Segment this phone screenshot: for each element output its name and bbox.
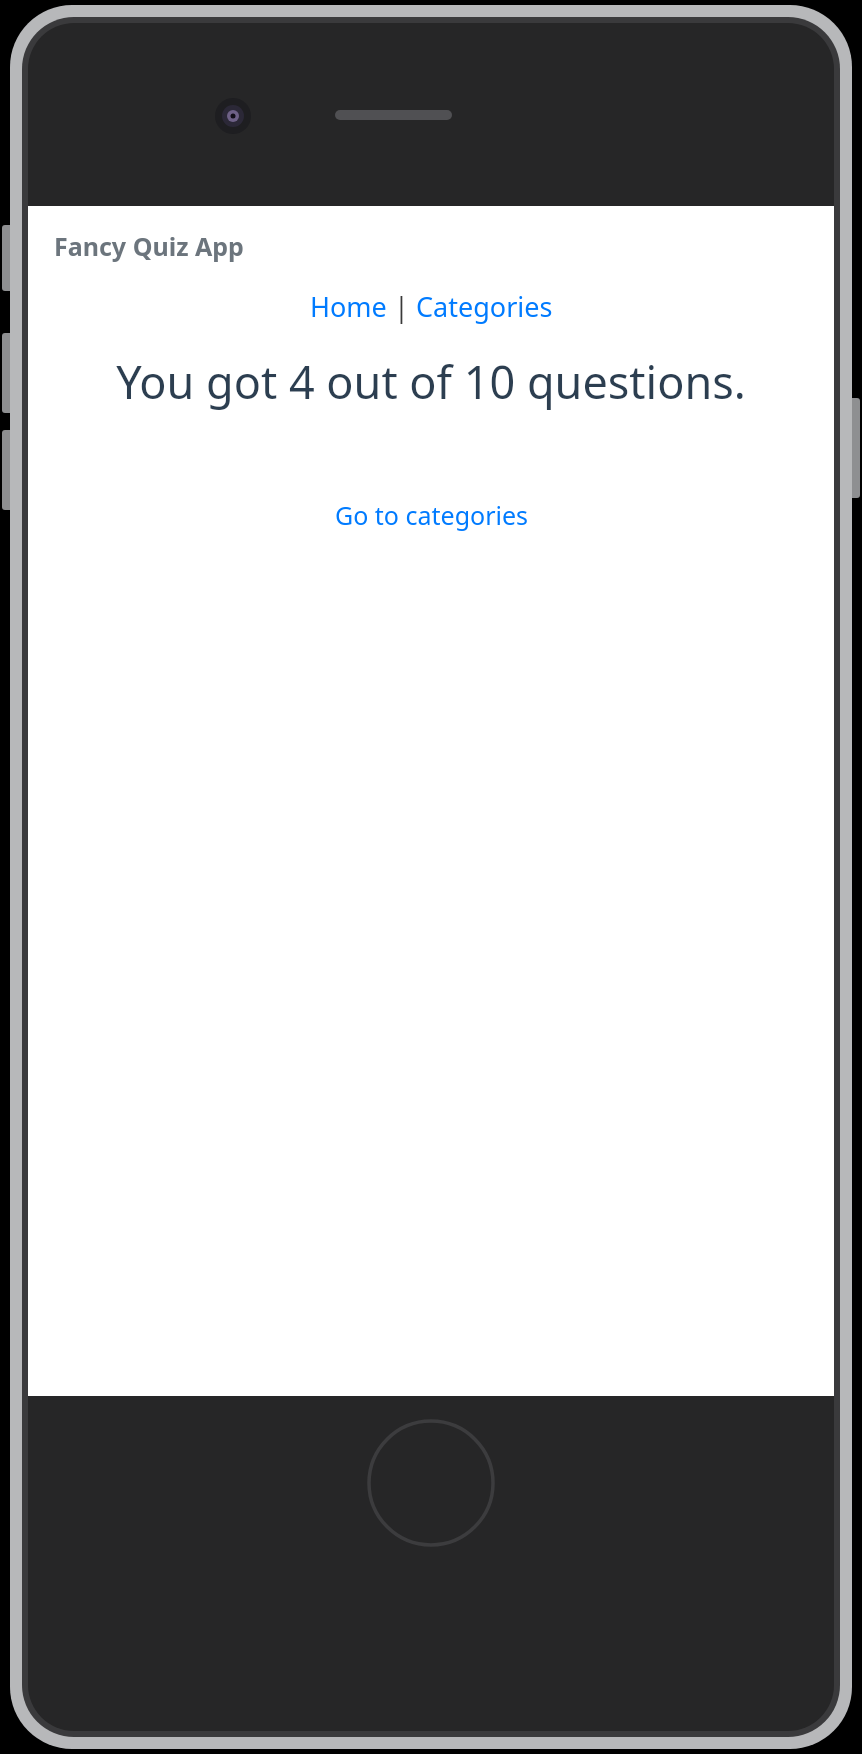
button[interactable]: Categories: [416, 288, 553, 325]
staticText: |: [387, 288, 416, 325]
button[interactable]: Go to categories: [335, 498, 528, 532]
button[interactable]: Volume down: [2, 430, 17, 510]
button[interactable]: Volume up: [2, 333, 17, 413]
button[interactable]: Fancy Quiz App: [54, 229, 244, 263]
button[interactable]: Power: [845, 398, 860, 498]
staticText: You got 4 out of 10 questions.: [64, 351, 798, 412]
button[interactable]: Mute switch: [2, 225, 17, 291]
button[interactable]: Home: [310, 288, 387, 325]
